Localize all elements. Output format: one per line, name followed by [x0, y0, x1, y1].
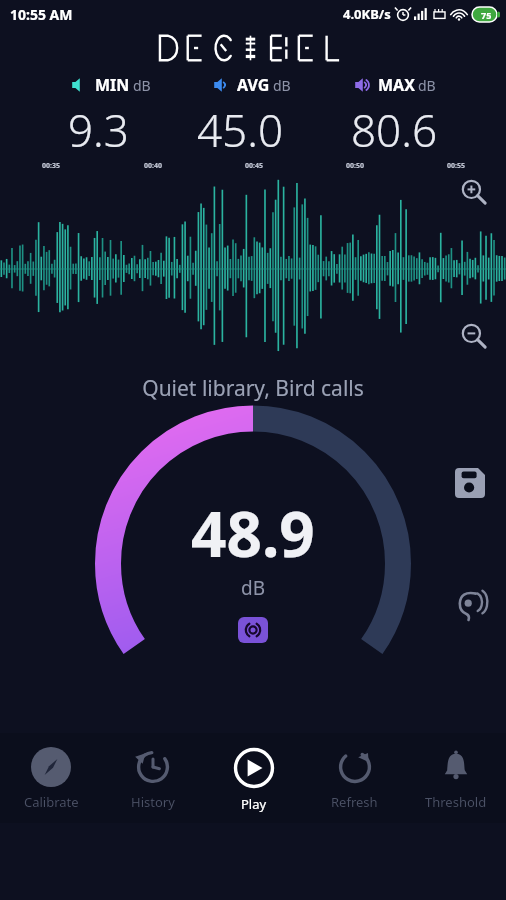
staticText: 9.3	[68, 100, 129, 160]
staticText: Play	[241, 795, 267, 813]
staticText: 00:40	[144, 161, 162, 171]
staticText: MAX	[378, 74, 415, 96]
staticText: 48.9	[191, 491, 315, 575]
staticText: Calibrate	[24, 793, 79, 811]
button[interactable]: Threshold	[405, 733, 506, 823]
staticText: 80.6	[351, 100, 438, 160]
button[interactable]: History	[102, 733, 203, 823]
staticText: 00:50	[346, 161, 364, 171]
staticText: History	[131, 793, 175, 811]
button[interactable]: Microphone active	[238, 617, 268, 643]
button[interactable]: Zoom in	[456, 174, 492, 210]
staticText: dB	[241, 575, 266, 601]
button[interactable]: Zoom out	[456, 318, 492, 354]
staticText: dB	[418, 76, 436, 95]
button[interactable]: Save	[448, 461, 492, 505]
staticText: 00:55	[447, 161, 465, 171]
button[interactable]: Calibrate	[0, 733, 102, 823]
staticText: dB	[273, 76, 291, 95]
button[interactable]: Refresh	[304, 733, 405, 823]
staticText: MIN	[95, 74, 130, 96]
staticText: dB	[133, 76, 151, 95]
staticText: Refresh	[331, 793, 378, 811]
button[interactable]: Hearing	[448, 583, 492, 627]
staticText: 10:55 AM	[10, 5, 73, 24]
staticText: 4.0KB/s	[343, 5, 391, 23]
staticText: AVG	[237, 74, 270, 96]
staticText: Quiet library, Bird calls	[0, 374, 506, 403]
staticText: 75	[481, 9, 492, 21]
staticText: 00:45	[245, 161, 263, 171]
staticText: Threshold	[425, 793, 487, 811]
staticText: 00:35	[42, 161, 60, 171]
button[interactable]: Play	[203, 733, 304, 823]
staticText: 45.0	[197, 100, 284, 160]
